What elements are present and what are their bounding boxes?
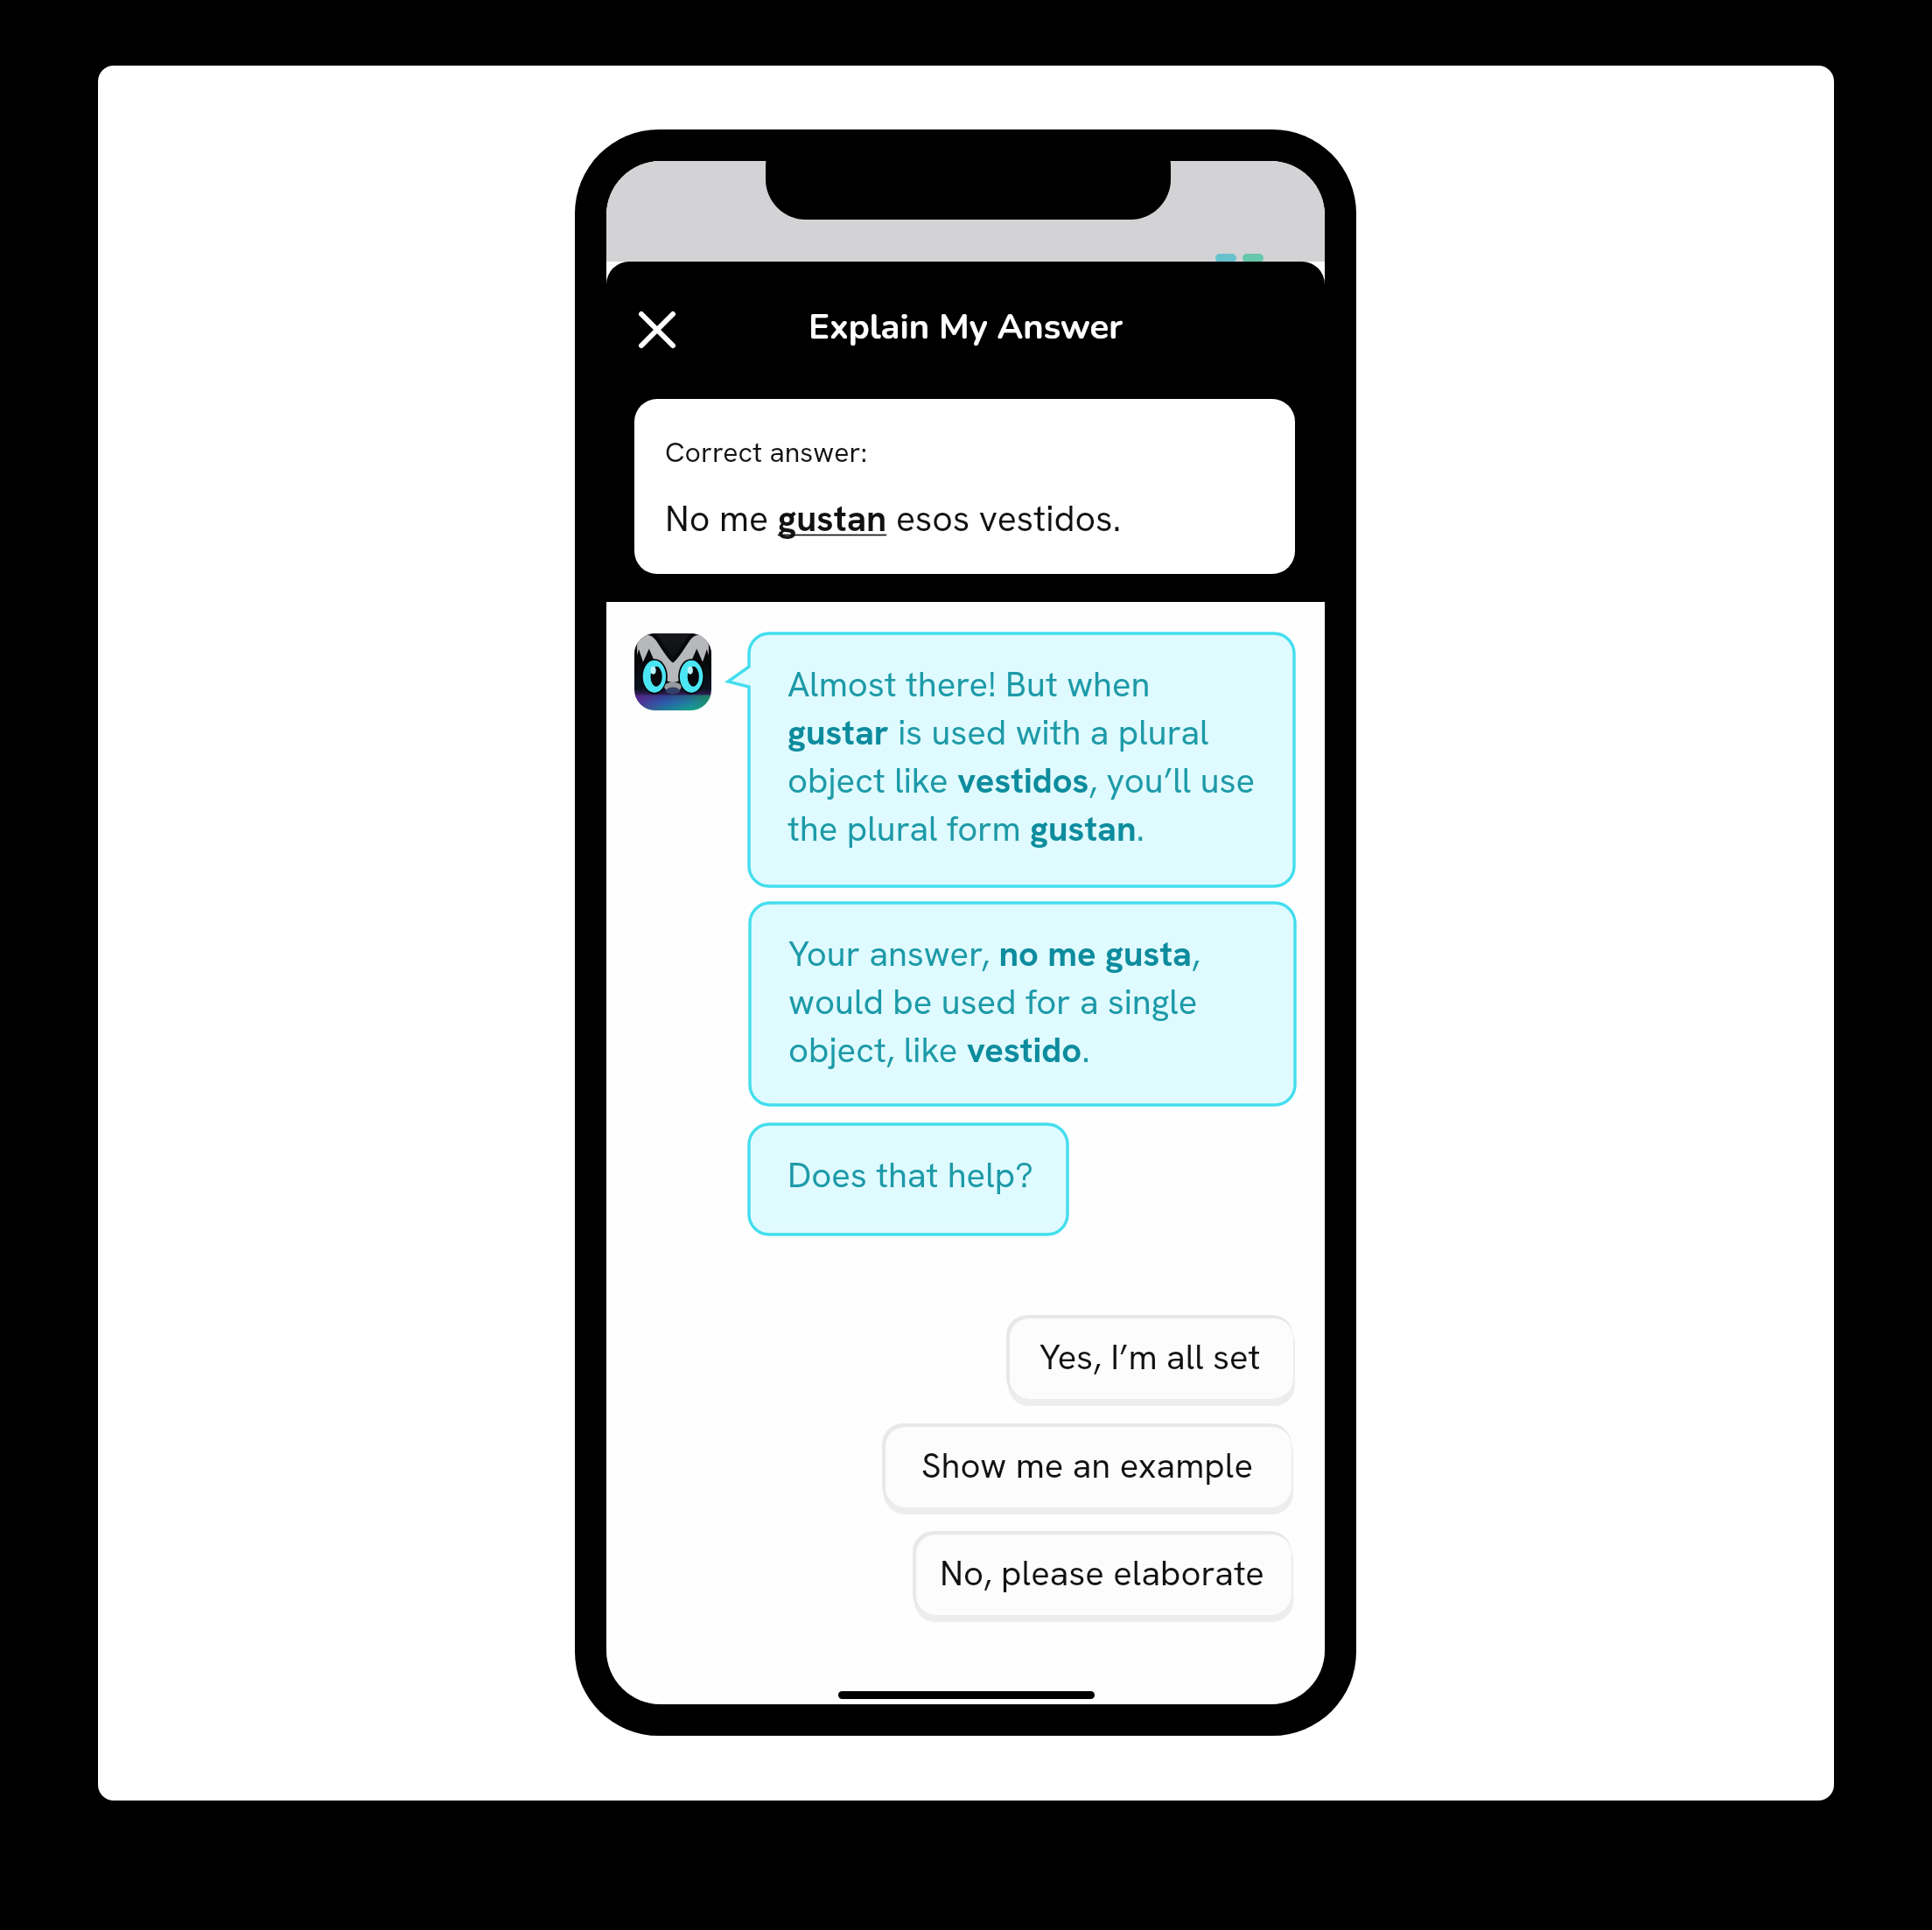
button[interactable]: Show me an example bbox=[882, 1423, 1291, 1507]
staticText: Explain My Answer bbox=[606, 304, 1325, 352]
staticText: Yes, I’m all set bbox=[1039, 1334, 1261, 1380]
staticText: No, please elaborate bbox=[940, 1550, 1264, 1596]
staticText: Correct answer: bbox=[665, 434, 868, 471]
other: Lily, your Duolingo tutor bbox=[634, 633, 711, 710]
button[interactable]: Does that help? bbox=[749, 1124, 1067, 1234]
button[interactable]: Almost there! But when gustar is used wi… bbox=[749, 633, 1294, 886]
staticText: Almost there! But when gustar is used wi… bbox=[787, 661, 1256, 851]
button[interactable]: No, please elaborate bbox=[913, 1531, 1291, 1615]
button[interactable]: Yes, I’m all set bbox=[1006, 1315, 1293, 1399]
staticText: Show me an example bbox=[921, 1443, 1253, 1488]
staticText: Your answer, no me gusta, would be used … bbox=[788, 931, 1200, 1073]
button[interactable]: Your answer, no me gusta, would be used … bbox=[750, 903, 1295, 1105]
staticText: No me gustan esos vestidos. bbox=[665, 495, 1122, 542]
staticText: Does that help? bbox=[787, 1152, 1033, 1198]
button[interactable]: Close bbox=[624, 297, 690, 363]
